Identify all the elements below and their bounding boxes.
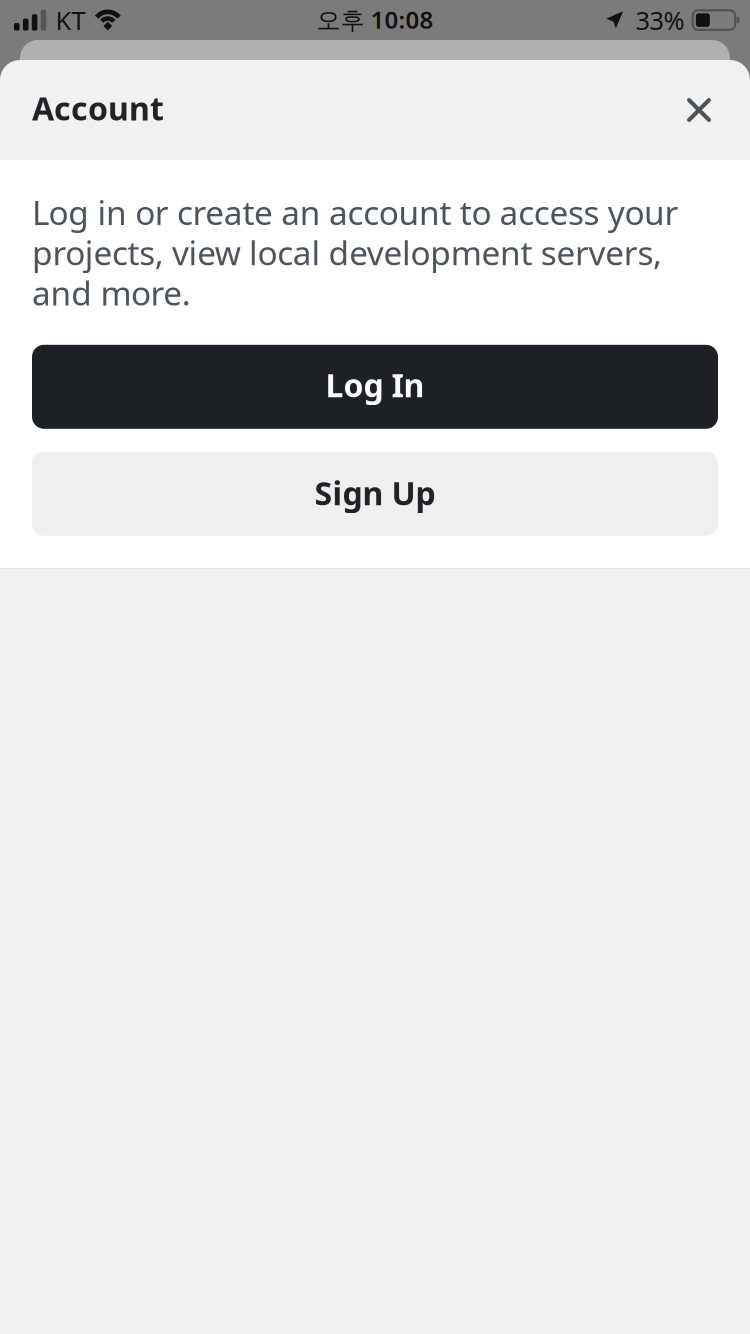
button[interactable]: Close — [667, 78, 731, 142]
staticText: KT — [55, 3, 85, 37]
staticText: Log in or create an account to access yo… — [32, 190, 679, 315]
button[interactable]: Sign Up — [32, 452, 718, 536]
button[interactable]: Log In — [32, 345, 718, 429]
staticText: 오후 10:08 — [316, 4, 433, 35]
staticText: Log In — [325, 363, 424, 406]
staticText: Sign Up — [314, 471, 435, 514]
staticText: Account — [32, 87, 164, 129]
staticText: 33% — [636, 3, 685, 37]
